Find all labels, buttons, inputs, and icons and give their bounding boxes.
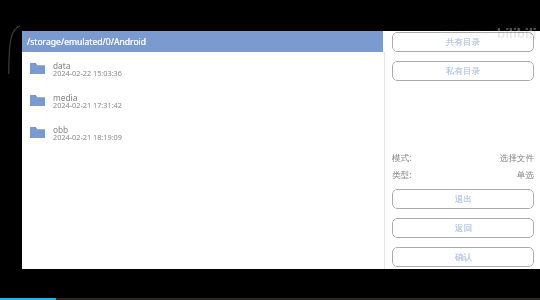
button[interactable]: 退出 [392, 189, 534, 209]
staticText: bilibili [497, 24, 537, 31]
staticText: 2024-02-21 18:19:09 [53, 132, 122, 142]
staticText: 确认 [455, 252, 472, 263]
staticText: 哔哩哔哩弹幕网 [443, 30, 489, 31]
button[interactable]: /storage/emulated/0/Android [22, 31, 383, 52]
button[interactable]: 返回 [392, 218, 534, 238]
staticText: 类型: [392, 169, 412, 181]
staticText: 哔哩哔哩弹幕网 [443, 31, 489, 38]
staticText: 私有目录 [446, 66, 480, 77]
staticText: media [53, 92, 78, 103]
staticText: obb [53, 124, 69, 135]
staticText: 模式: [392, 152, 412, 164]
staticText: /storage/emulated/0/Android [27, 36, 147, 48]
staticText: 退出 [455, 194, 472, 205]
button[interactable]: media [22, 93, 383, 125]
button[interactable]: 私有目录 [392, 61, 534, 81]
staticText: 单选 [516, 170, 534, 181]
staticText: 共有目录 [446, 37, 480, 48]
staticText: bilibili [497, 31, 537, 42]
staticText: 2024-02-22 15:03:36 [53, 68, 122, 78]
button[interactable]: data [22, 61, 383, 93]
staticText: data [53, 60, 71, 71]
staticText: 选择文件 [499, 153, 534, 164]
button[interactable]: 共有目录 [392, 32, 534, 52]
staticText: 返回 [455, 223, 472, 234]
staticText: 2024-02-21 17:31:42 [53, 100, 122, 110]
button[interactable]: obb [22, 125, 383, 157]
button[interactable]: 确认 [392, 247, 534, 267]
